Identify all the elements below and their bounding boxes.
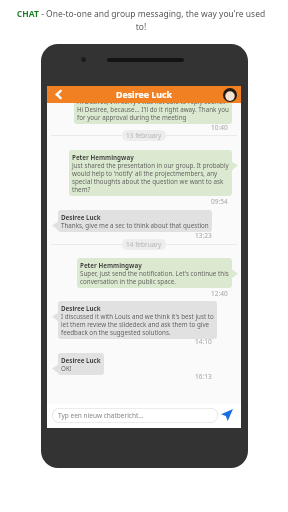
staticText: Peter Hemmingway Super, just send the no… xyxy=(80,261,229,285)
button[interactable]: Peter Hemmingway Super, just send the no… xyxy=(77,258,232,288)
staticText: Desiree Luck Thanks, give me a sec to th… xyxy=(61,213,209,229)
button[interactable]: Send xyxy=(218,404,236,426)
staticText: Desiree Luck I discussed it with Louis a… xyxy=(61,304,214,336)
staticText: 10:40 xyxy=(211,123,228,132)
button[interactable]: Desiree Luck OK! xyxy=(58,353,104,375)
button[interactable]: Hi Desiree, I'm sorry I was not able to … xyxy=(74,94,232,124)
button[interactable]: Contact profile xyxy=(223,88,237,102)
staticText: 09:54 xyxy=(211,197,228,206)
staticText: Typ een nieuw chatbericht... xyxy=(58,411,144,420)
staticText: Desiree Luck xyxy=(116,89,172,101)
staticText: Peter Hemmingway Just shared the present… xyxy=(72,153,229,193)
button[interactable]: Peter Hemmingway Just shared the present… xyxy=(69,150,232,196)
staticText: 13:23 xyxy=(195,231,212,240)
staticText: 13 february xyxy=(126,131,162,140)
staticText: 14:10 xyxy=(195,337,212,346)
button[interactable]: Back xyxy=(50,86,67,103)
button[interactable]: Desiree Luck I discussed it with Louis a… xyxy=(58,301,217,339)
staticText: 16:13 xyxy=(195,372,212,381)
button[interactable]: Typ een nieuw chatbericht... xyxy=(52,408,218,423)
staticText: CHAT - One-to-one and group messaging, t… xyxy=(12,8,270,33)
button[interactable]: Desiree Luck Thanks, give me a sec to th… xyxy=(58,210,212,232)
staticText: 14 february xyxy=(126,240,162,249)
staticText: Desiree Luck OK! xyxy=(61,356,101,372)
staticText: Hi Desiree, I'm sorry I was not able to … xyxy=(77,97,229,121)
staticText: 12:40 xyxy=(211,289,228,298)
